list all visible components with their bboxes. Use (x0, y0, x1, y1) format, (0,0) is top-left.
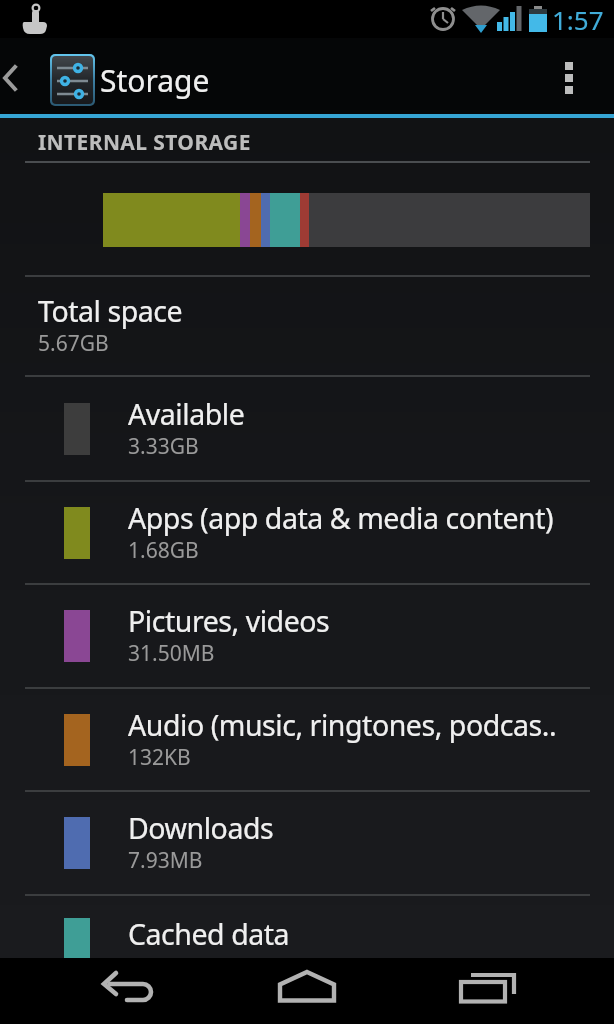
staticText: Audio (music, ringtones, podcas.. (128, 706, 557, 745)
staticText: Total space (38, 292, 183, 331)
staticText: Downloads (128, 809, 274, 848)
button[interactable]: Storage (0, 38, 614, 114)
staticText: Cached data (128, 915, 290, 954)
staticText: 5.67GB (38, 329, 109, 358)
staticText: 1:57 (552, 2, 604, 37)
staticText: 3.33GB (128, 432, 199, 461)
button[interactable]: Audio (music, ringtones, podcas.. (0, 689, 614, 790)
staticText: 1.68GB (128, 536, 199, 565)
staticText: Apps (app data & media content) (128, 499, 554, 538)
button[interactable]: Pictures, videos (0, 585, 614, 687)
button[interactable] (554, 38, 614, 114)
button[interactable] (0, 958, 204, 1024)
button[interactable]: Cached data (0, 896, 614, 958)
button[interactable]: Available (0, 377, 614, 480)
staticText: Pictures, videos (128, 602, 330, 641)
button[interactable]: Apps (app data & media content) (0, 482, 614, 583)
staticText: 31.50MB (128, 639, 215, 668)
button[interactable]: Downloads (0, 792, 614, 894)
button[interactable]: Total space (0, 277, 614, 375)
staticText: Storage (100, 60, 210, 101)
staticText: Available (128, 395, 245, 434)
staticText: INTERNAL STORAGE (38, 128, 251, 157)
staticText: 7.93MB (128, 846, 203, 875)
staticText: 132KB (128, 743, 191, 772)
button[interactable] (409, 958, 614, 1024)
button[interactable] (204, 958, 409, 1024)
